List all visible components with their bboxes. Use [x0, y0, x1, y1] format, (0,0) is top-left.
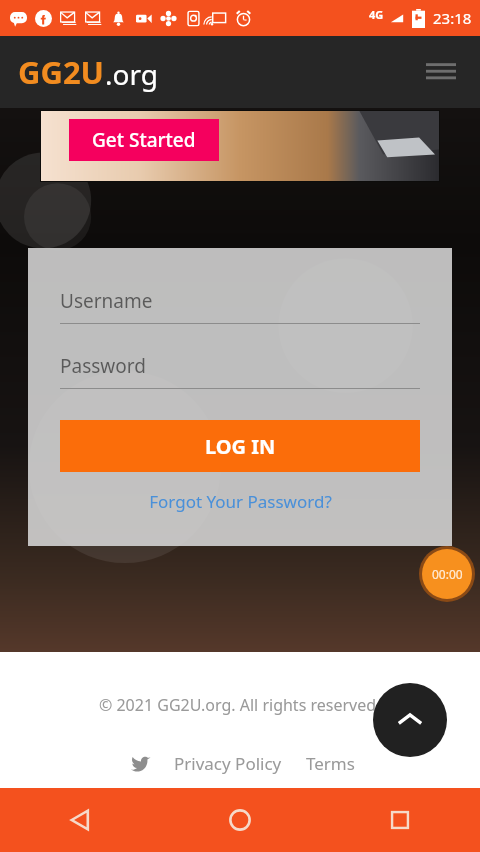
button[interactable]: Home — [160, 788, 320, 852]
button[interactable]: Recent apps — [320, 788, 480, 852]
staticText: 4G — [369, 7, 384, 22]
button[interactable]: Open navigation menu — [416, 47, 466, 97]
button[interactable]: Username — [60, 288, 420, 324]
staticText: 23:18 — [433, 8, 472, 28]
button[interactable]: Scroll to top — [373, 683, 447, 757]
button[interactable]: Privacy Policy — [174, 752, 282, 775]
button[interactable]: Get Started — [69, 119, 219, 161]
button[interactable]: Terms — [306, 752, 355, 775]
staticText: LOG IN — [205, 433, 276, 460]
staticText: Forgot Your Password? — [149, 490, 332, 513]
staticText: Privacy Policy — [174, 752, 282, 775]
staticText: Password — [60, 353, 146, 379]
staticText: GG2U — [18, 51, 105, 93]
staticText: .org — [105, 55, 158, 93]
staticText: Get Started — [92, 127, 196, 153]
button[interactable]: 00:00 — [422, 549, 472, 599]
button[interactable]: Password — [60, 353, 420, 389]
staticText: Terms — [306, 752, 355, 775]
button[interactable]: Twitter — [126, 748, 156, 778]
button[interactable]: LOG IN — [60, 420, 420, 472]
staticText: 00:00 — [432, 566, 463, 582]
button[interactable]: GG2U — [0, 36, 480, 108]
button[interactable]: Back — [0, 788, 160, 852]
button[interactable]: Get Started — [41, 111, 439, 181]
staticText: Username — [60, 288, 153, 314]
button[interactable]: Forgot Your Password? — [60, 490, 420, 513]
staticText: © 2021 GG2U.org. All rights reserved. — [99, 694, 381, 716]
